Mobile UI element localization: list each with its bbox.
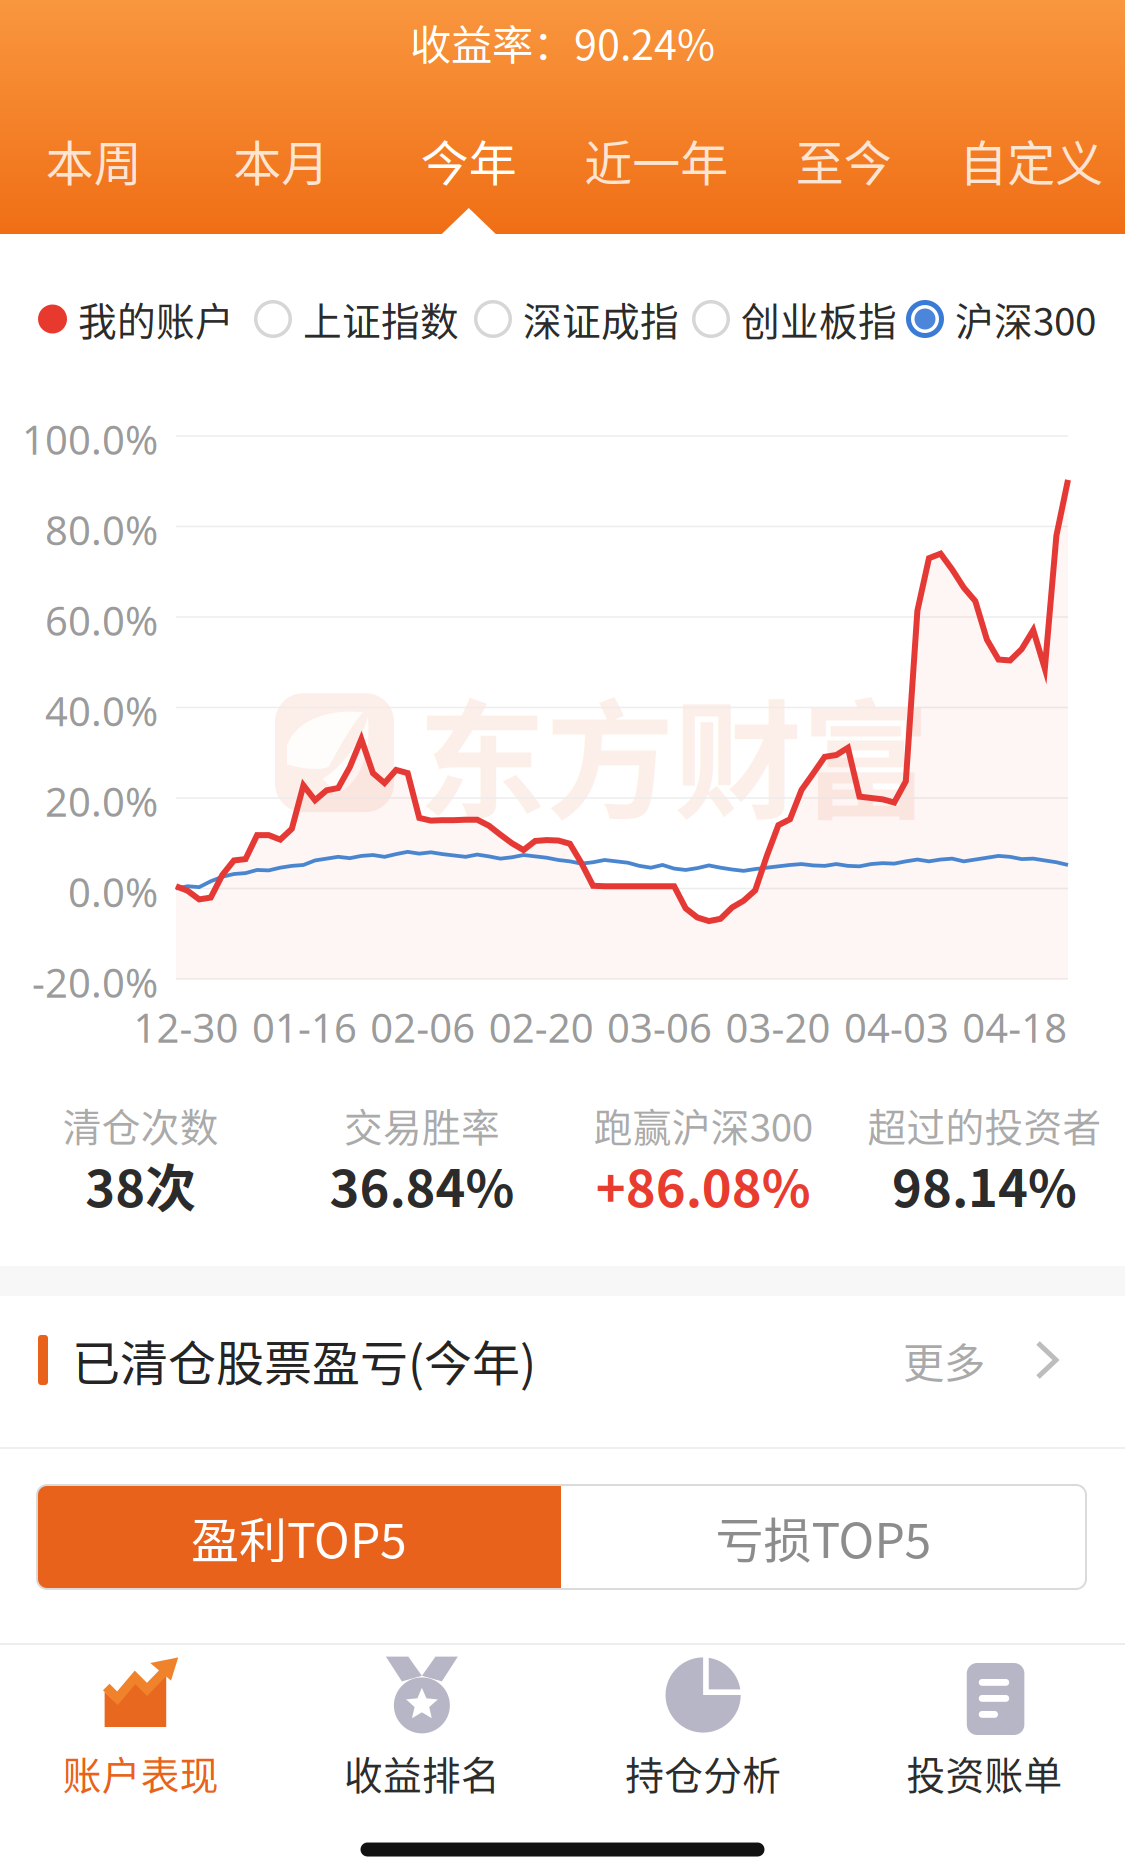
staticText: 账户表现 (63, 1745, 219, 1801)
staticText: 本月 (233, 125, 329, 195)
staticText: 04-18 (962, 1000, 1067, 1054)
staticText: 40.0% (45, 683, 158, 738)
staticText: 盈利TOP5 (191, 1502, 407, 1572)
staticText: 本周 (46, 125, 142, 195)
staticText: 至今 (796, 125, 892, 195)
staticText: 已清仓股票盈亏(今年) (72, 1325, 536, 1395)
staticText: 04-03 (844, 1000, 949, 1054)
staticText: 自定义 (959, 125, 1103, 195)
button[interactable]: 盈利TOP5 (37, 1485, 561, 1589)
staticText: 60.0% (45, 593, 158, 647)
button[interactable]: 自定义 (937, 100, 1125, 220)
staticText: 更多 (903, 1330, 985, 1390)
staticText: 12-30 (133, 1000, 238, 1054)
button[interactable]: 我的账户 (38, 294, 268, 344)
staticText: 亏损TOP5 (715, 1502, 931, 1572)
staticText: 36.84% (329, 1148, 514, 1222)
staticText: 03-06 (607, 1000, 712, 1054)
button[interactable]: 本周 (0, 100, 187, 220)
button[interactable]: 上证指数 (254, 294, 484, 344)
staticText: 80.0% (45, 502, 158, 557)
staticText: 沪深300 (955, 291, 1096, 347)
staticText: 02-20 (489, 1000, 594, 1054)
staticText: 0.0% (68, 864, 158, 919)
button[interactable]: 持仓分析 (562, 1631, 844, 1815)
staticText: 投资账单 (906, 1745, 1062, 1801)
button[interactable]: 至今 (750, 100, 937, 220)
staticText: 收益率：90.24% (410, 12, 715, 72)
staticText: 跑赢沪深300 (594, 1097, 813, 1153)
staticText: 收益排名 (344, 1745, 500, 1801)
button[interactable]: 近一年 (562, 100, 750, 220)
button[interactable]: 创业板指 (692, 294, 922, 344)
staticText: 东方财富 (418, 660, 930, 845)
staticText: -20.0% (32, 955, 158, 1009)
staticText: 02-06 (370, 1000, 475, 1054)
button[interactable]: 收益排名 (281, 1631, 562, 1815)
staticText: 交易胜率 (344, 1097, 500, 1153)
staticText: +86.08% (596, 1148, 811, 1222)
staticText: 近一年 (584, 125, 728, 195)
staticText: 深证成指 (523, 291, 679, 347)
button[interactable]: 已清仓股票盈亏(今年) (38, 1288, 738, 1432)
staticText: 创业板指 (741, 291, 897, 347)
staticText: 98.14% (892, 1148, 1077, 1222)
staticText: 清仓次数 (63, 1097, 219, 1153)
button[interactable]: 账户表现 (0, 1631, 281, 1815)
button[interactable]: 沪深300 (906, 294, 1125, 344)
staticText: 我的账户 (78, 291, 234, 347)
button[interactable]: 投资账单 (844, 1631, 1125, 1815)
staticText: 持仓分析 (625, 1745, 781, 1801)
staticText: 上证指数 (303, 291, 459, 347)
button[interactable]: 亏损TOP5 (561, 1485, 1086, 1589)
staticText: 01-16 (252, 1000, 357, 1054)
staticText: 20.0% (45, 774, 158, 828)
button[interactable]: 本月 (187, 100, 375, 220)
staticText: 超过的投资者 (867, 1097, 1101, 1153)
staticText: 今年 (421, 125, 517, 195)
button[interactable]: 深证成指 (474, 294, 704, 344)
staticText: 100.0% (22, 412, 158, 466)
button[interactable]: 更多 (903, 1288, 1081, 1432)
staticText: 38次 (85, 1148, 196, 1222)
staticText: 03-20 (725, 1000, 830, 1054)
button[interactable]: 今年 (375, 100, 562, 220)
